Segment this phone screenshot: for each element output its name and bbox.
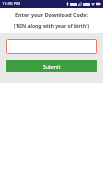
button[interactable]: Download code input [6, 39, 97, 54]
staticText: Enter your Download Code: [0, 11, 103, 18]
staticText: Submit [43, 63, 61, 70]
button[interactable]: Submit [6, 60, 97, 72]
staticText: 11:55 PM [2, 1, 21, 7]
staticText: ('RIN along with year of birth') [0, 23, 103, 30]
